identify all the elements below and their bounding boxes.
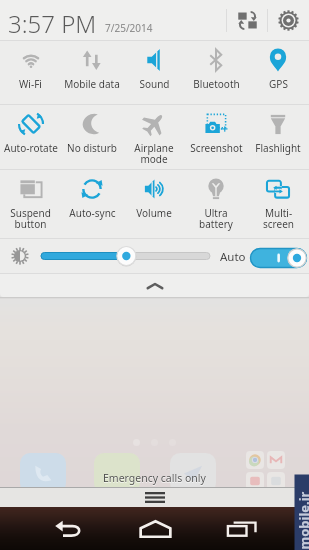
staticText: Emergency calls only [103,472,206,486]
button[interactable]: Volume [123,170,185,239]
staticText: Auto [220,249,246,265]
staticText: Emergency calls only [103,471,206,485]
staticText: Auto-sync [69,206,116,220]
staticText: Mobile data [64,77,120,91]
staticText: Multi- screen [263,206,294,231]
button[interactable]: No disturb [61,105,123,170]
staticText: Airplane mode [134,141,174,166]
button[interactable]: GPS [247,41,309,105]
button[interactable]: Flashlight [247,105,309,170]
button[interactable]: Ultra battery [185,170,247,239]
staticText: Bluetooth [193,77,240,91]
staticText: 7/25/2014 [105,21,153,35]
staticText: GPS [269,77,288,91]
button[interactable]: Wi-Fi [0,41,61,105]
button[interactable]: Suspend button [0,170,61,239]
button[interactable]: Mobile data [61,41,123,105]
button[interactable]: Screenshot [185,105,247,170]
button[interactable]: Sound [123,41,185,105]
button[interactable]: Auto-rotate [0,105,61,170]
button[interactable]: Airplane mode [123,105,185,170]
button[interactable]: Settings [269,0,307,41]
staticText: mobile.ir [294,491,309,549]
staticText: Volume [136,206,172,220]
staticText: Flashlight [255,141,301,155]
staticText: No disturb [67,141,117,155]
button[interactable]: Recents [205,507,279,550]
staticText: Ultra battery [199,206,233,231]
staticText: 3:57 PM [8,7,97,40]
button[interactable]: App drawer [142,489,168,505]
staticText: Auto-rotate [4,141,58,155]
button[interactable]: Multi- screen [247,170,309,239]
button[interactable]: Auto-sync [61,170,123,239]
staticText: Wi-Fi [19,77,42,91]
staticText: Suspend button [10,206,51,231]
button[interactable]: Collapse [0,274,309,297]
button[interactable]: Bluetooth [185,41,247,105]
button[interactable]: Back [32,507,106,550]
staticText: Sound [139,77,170,91]
button[interactable]: Home [118,507,192,550]
button[interactable]: Brightness [41,246,210,266]
button[interactable]: Auto brightness [250,248,307,268]
staticText: Screenshot [190,141,243,155]
button[interactable]: Switch user [228,0,266,41]
